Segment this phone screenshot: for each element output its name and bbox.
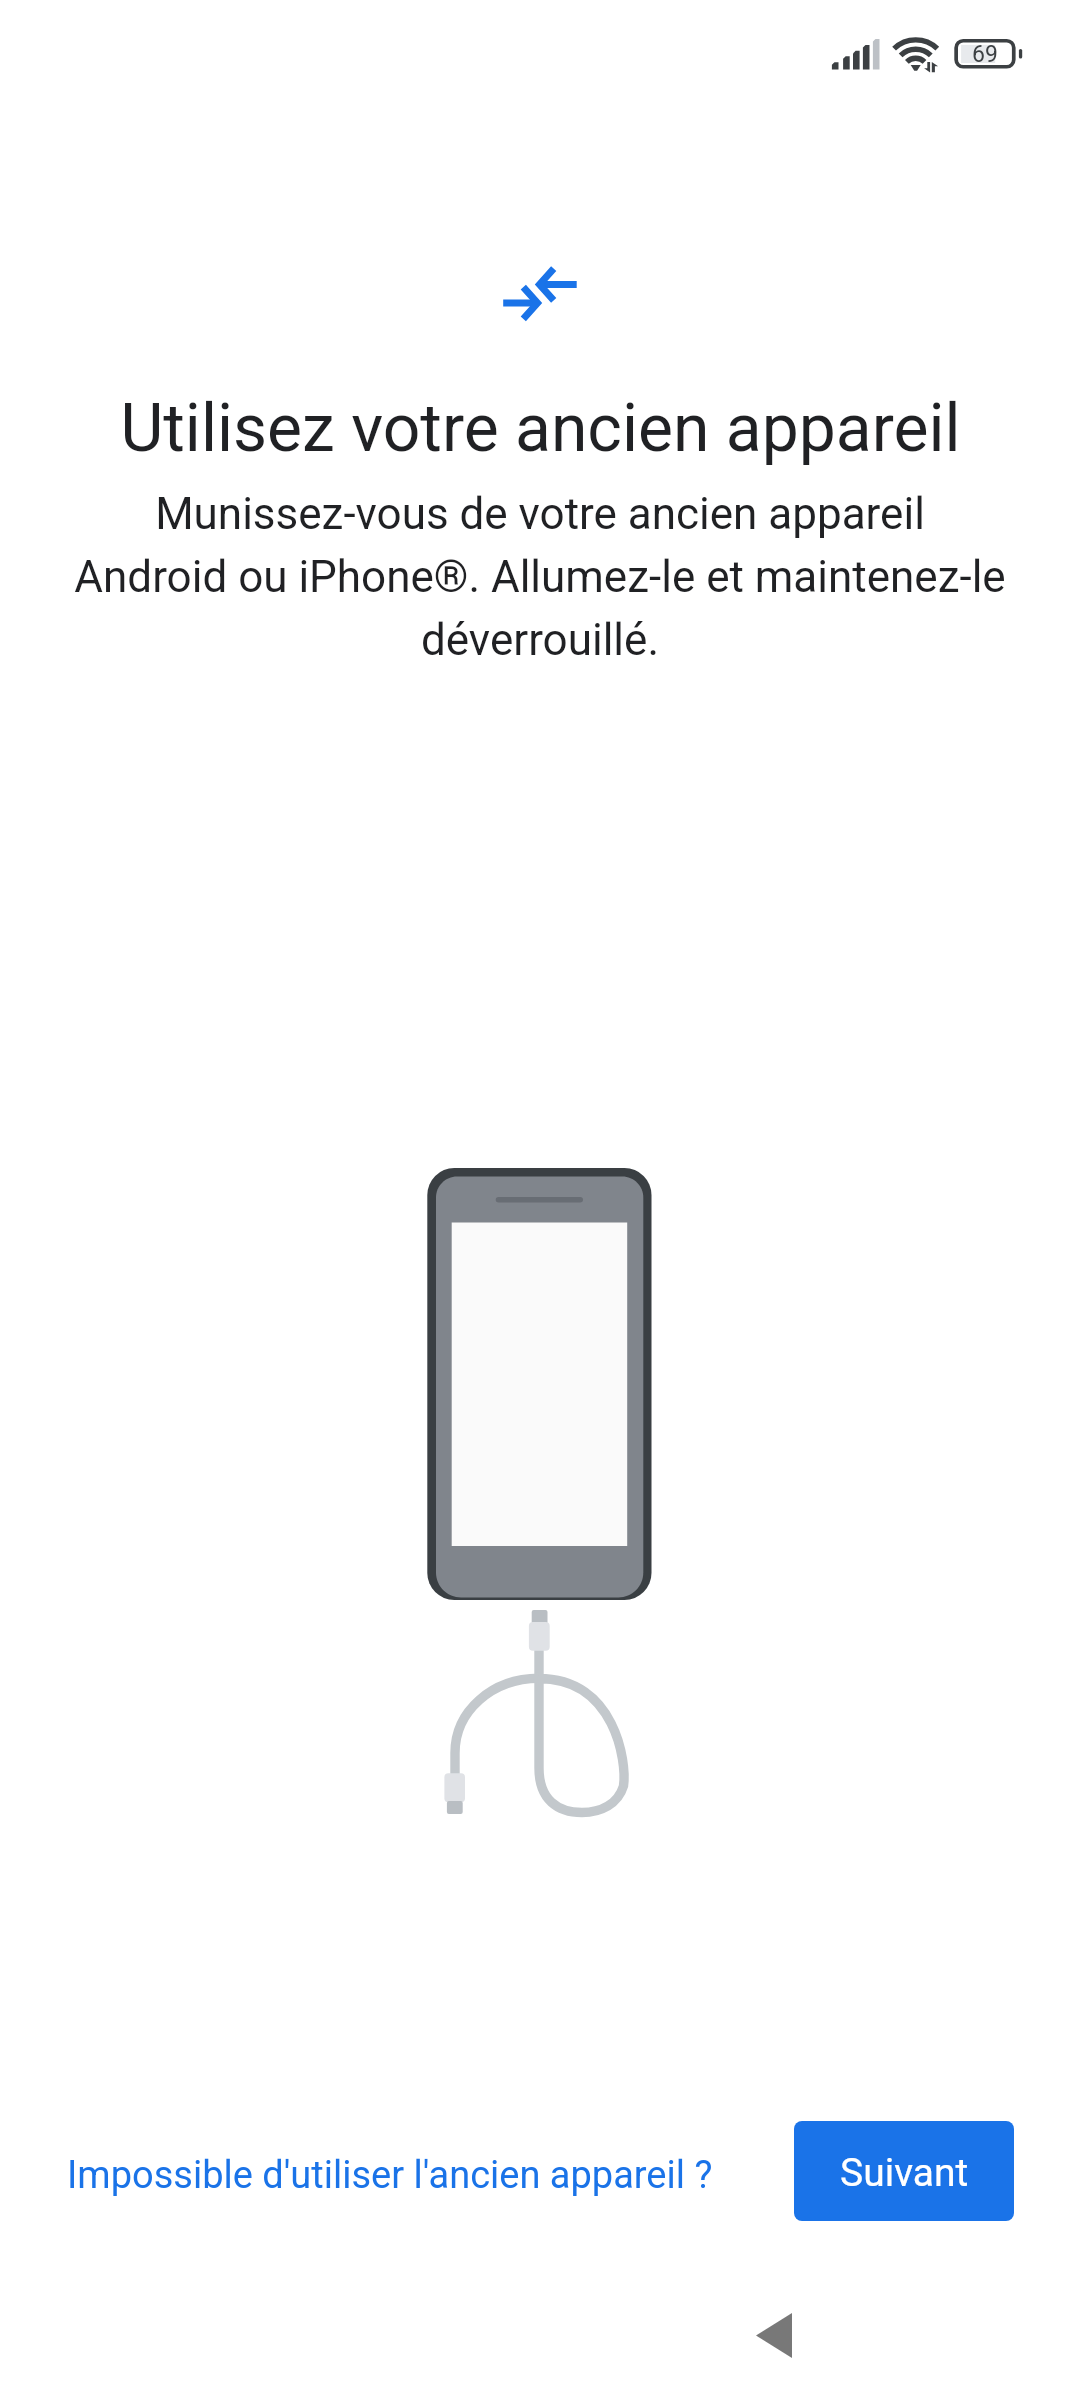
staticText: Utilisez votre ancien appareil bbox=[120, 390, 961, 467]
button[interactable]: Suivant bbox=[794, 2121, 1014, 2221]
button[interactable]: Impossible d'utiliser l'ancien appareil … bbox=[53, 2141, 727, 2210]
staticText: 69 bbox=[972, 41, 998, 68]
staticText: Munissez-vous de votre ancien appareil A… bbox=[74, 488, 1006, 666]
button[interactable]: Back bbox=[724, 2285, 824, 2385]
staticText: Suivant bbox=[840, 2150, 969, 2196]
staticText: Impossible d'utiliser l'ancien appareil … bbox=[67, 2153, 713, 2198]
